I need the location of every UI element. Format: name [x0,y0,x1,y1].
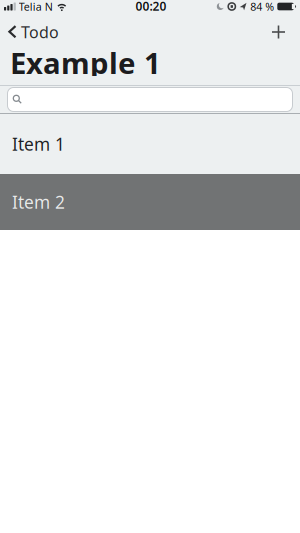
staticText: Example 1 [10,43,161,82]
button[interactable]: Search [0,86,300,113]
staticText: Item 1 [12,132,65,155]
button[interactable]: Add [272,25,300,38]
button[interactable]: Todo [0,21,59,43]
button[interactable]: Item 1 [0,114,300,174]
button[interactable]: Item 2 [0,174,300,230]
staticText: Todo [21,21,59,43]
staticText: Item 2 [12,190,65,213]
staticText: 00:20 [135,0,166,14]
staticText: Telia N [19,0,53,14]
staticText: 84 % [250,0,274,14]
